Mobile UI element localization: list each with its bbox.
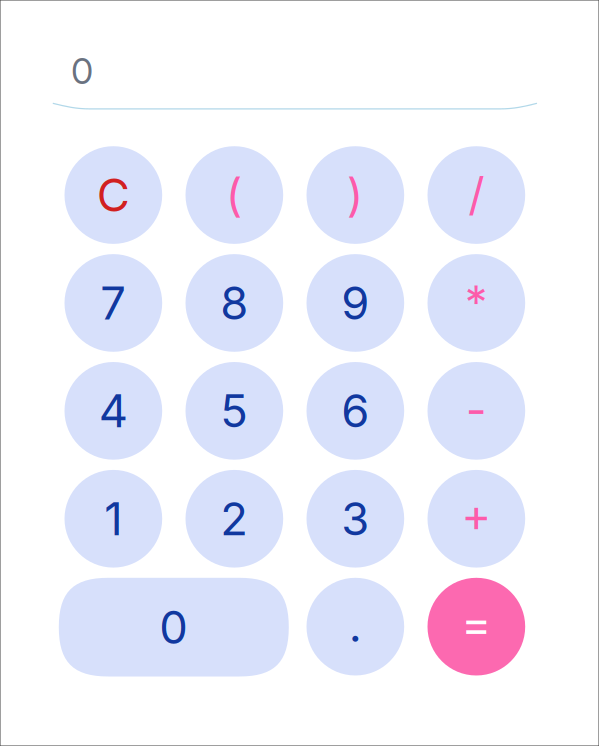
staticText: 1: [104, 491, 122, 546]
button[interactable]: 7: [64, 254, 162, 352]
staticText: =: [461, 596, 491, 651]
button[interactable]: Add: [427, 470, 525, 568]
staticText: 6: [341, 383, 369, 438]
button[interactable]: 5: [185, 362, 283, 460]
staticText: +: [461, 487, 491, 542]
staticText: 0: [71, 49, 93, 93]
button[interactable]: 3: [306, 470, 404, 568]
button[interactable]: Multiply: [427, 254, 525, 352]
staticText: 4: [99, 383, 128, 438]
button[interactable]: 8: [185, 254, 283, 352]
staticText: 2: [220, 491, 248, 546]
button[interactable]: 0: [59, 578, 289, 676]
button[interactable]: Divide: [427, 146, 525, 244]
staticText: *: [465, 274, 488, 329]
staticText: 9: [341, 275, 369, 330]
button[interactable]: 2: [185, 470, 283, 568]
staticText: /: [468, 167, 484, 221]
staticText: 3: [341, 491, 369, 546]
button[interactable]: Clear: [64, 146, 162, 244]
staticText: .: [349, 598, 362, 653]
staticText: ): [347, 168, 364, 222]
staticText: C: [97, 168, 130, 222]
button[interactable]: Open bracket: [185, 146, 283, 244]
button[interactable]: Equals: [427, 578, 525, 675]
staticText: 7: [100, 275, 126, 330]
button[interactable]: 6: [306, 362, 404, 460]
button[interactable]: Close bracket: [306, 146, 404, 244]
button[interactable]: 4: [64, 362, 162, 460]
button[interactable]: 9: [306, 254, 404, 352]
staticText: 8: [220, 275, 248, 330]
staticText: 0: [159, 600, 188, 655]
staticText: -: [466, 382, 487, 437]
button[interactable]: Decimal point: [306, 578, 404, 675]
staticText: (: [226, 168, 243, 222]
button[interactable]: 1: [64, 470, 162, 568]
button[interactable]: Subtract: [427, 362, 525, 460]
staticText: 5: [220, 383, 248, 438]
